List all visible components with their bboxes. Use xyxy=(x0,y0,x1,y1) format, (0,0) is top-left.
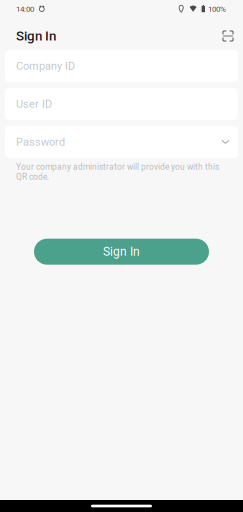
button[interactable]: Sign In xyxy=(34,239,209,265)
staticText: Company ID xyxy=(16,60,75,72)
staticText: Your company administrator will provide … xyxy=(16,162,219,182)
staticText: Sign In xyxy=(103,245,140,259)
button[interactable]: Company ID xyxy=(5,50,238,82)
staticText: User ID xyxy=(16,98,52,110)
staticText: Sign In xyxy=(16,28,56,44)
staticText: 14:00 xyxy=(16,4,34,14)
staticText: 100% xyxy=(208,4,226,14)
button[interactable]: Password xyxy=(5,126,238,158)
button[interactable]: Scan QR code xyxy=(218,26,238,46)
staticText: Password xyxy=(16,136,65,148)
button[interactable]: User ID xyxy=(5,88,238,120)
